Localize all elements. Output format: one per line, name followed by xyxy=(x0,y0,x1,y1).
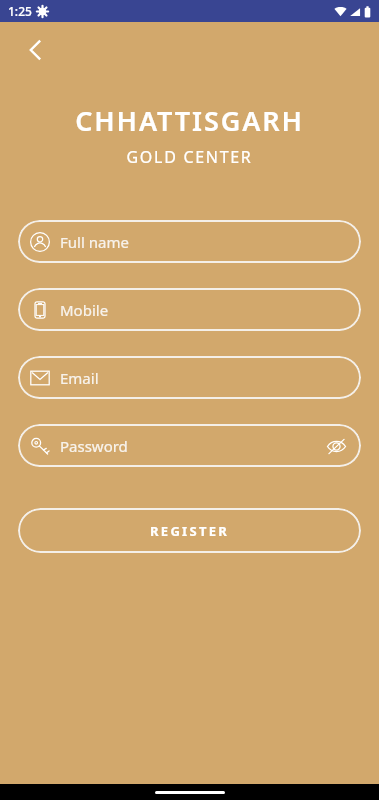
button[interactable]: Mobile xyxy=(18,288,361,331)
button[interactable]: Full name xyxy=(18,220,361,263)
staticText: 1:25 xyxy=(8,3,32,19)
button[interactable]: Password xyxy=(18,424,361,467)
staticText: REGISTER xyxy=(150,522,230,540)
staticText: Full name xyxy=(60,232,348,252)
staticText: Password xyxy=(60,436,324,456)
button[interactable]: Show password xyxy=(324,434,348,458)
button[interactable]: Email xyxy=(18,356,361,399)
staticText: Mobile xyxy=(60,300,348,320)
button[interactable]: Back xyxy=(13,27,59,73)
button[interactable]: REGISTER xyxy=(18,508,361,553)
staticText: Email xyxy=(60,368,348,388)
staticText: GOLD CENTER xyxy=(0,146,379,168)
staticText: CHHATTISGARH xyxy=(0,102,379,139)
